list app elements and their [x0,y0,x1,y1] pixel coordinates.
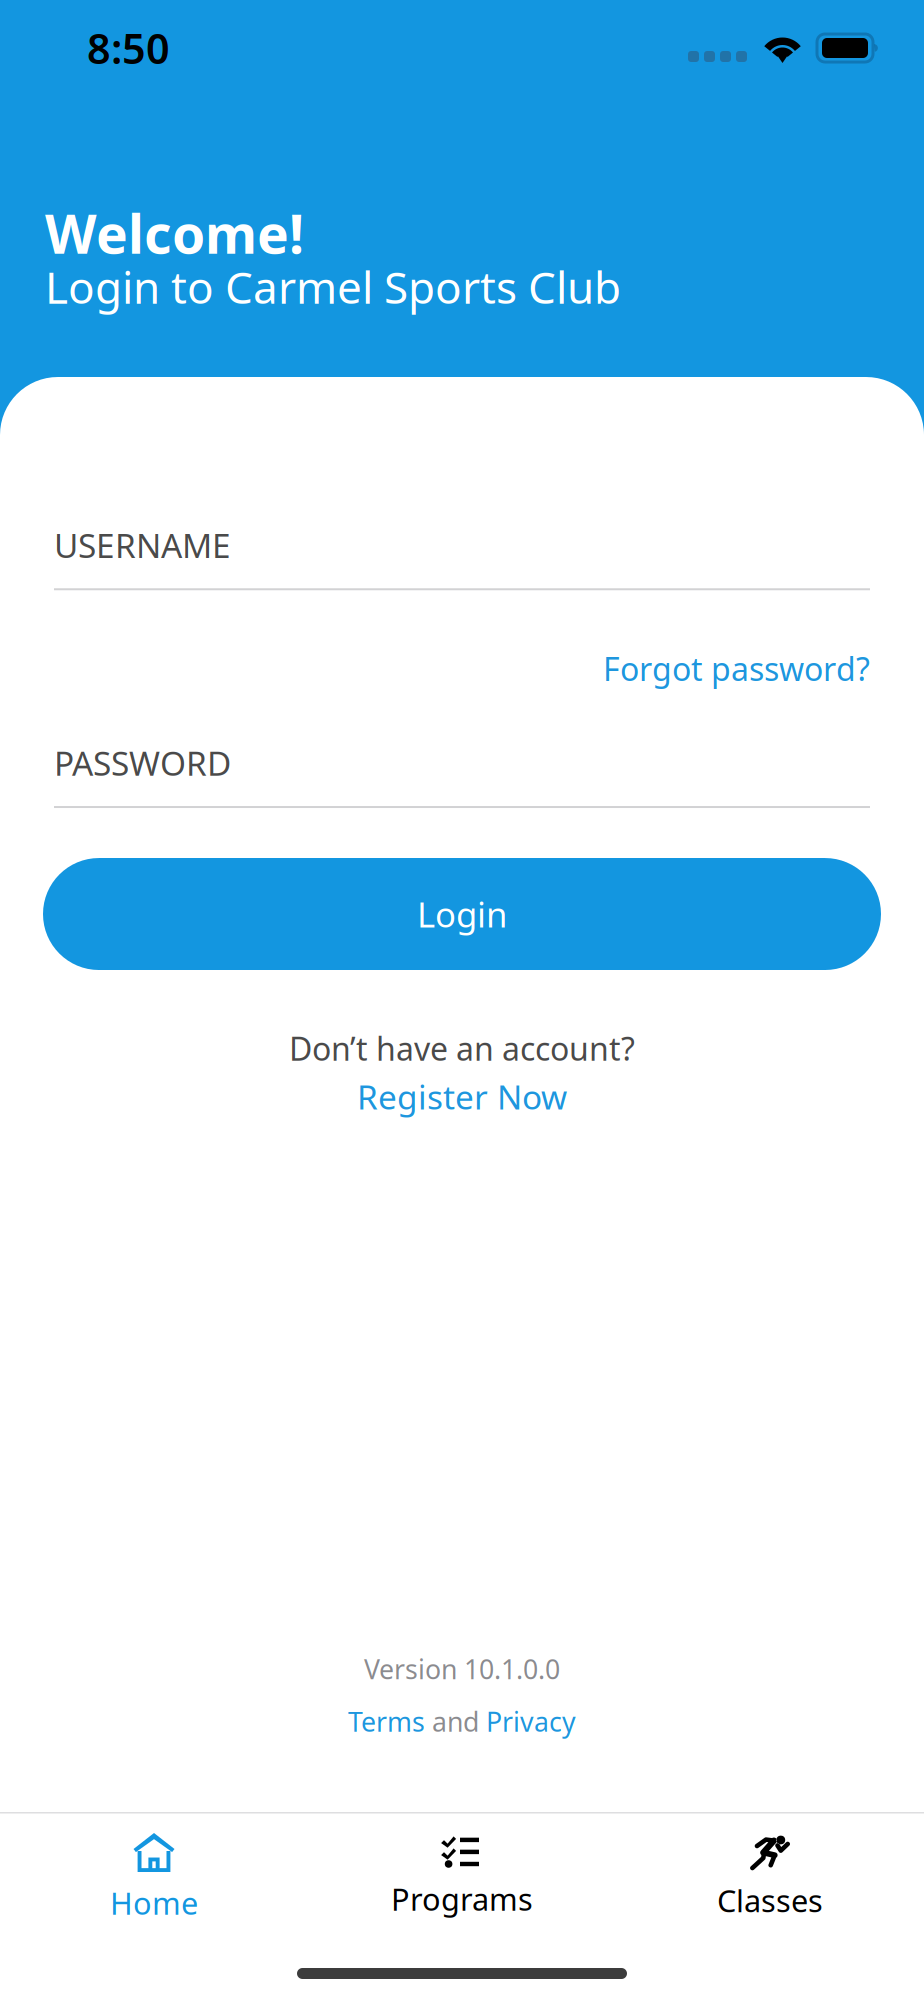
button[interactable]: Register Now [357,1074,567,1119]
staticText: Register Now [357,1074,567,1119]
staticText: USERNAME [54,523,231,567]
staticText: Login to Carmel Sports Club [45,258,621,316]
staticText: Terms [348,1704,425,1739]
staticText: and [425,1704,486,1739]
staticText: Classes [717,1880,823,1921]
button[interactable]: Classes [616,1829,924,1927]
button[interactable]: Home [0,1826,308,1929]
staticText: Programs [391,1878,533,1919]
staticText: Don’t have an account? [289,1027,635,1069]
button[interactable]: Privacy [486,1704,576,1739]
staticText: Privacy [486,1704,576,1739]
button[interactable]: Programs [308,1830,616,1925]
staticText: Welcome! [45,198,304,268]
staticText: Login [417,891,507,937]
staticText: Version 10.1.0.0 [364,1651,560,1687]
button[interactable]: Terms [348,1704,425,1739]
button[interactable]: Login [43,858,881,970]
staticText: PASSWORD [54,741,231,785]
staticText: Home [110,1882,198,1923]
button[interactable]: Forgot password? [603,647,870,690]
staticText: Forgot password? [603,647,870,690]
staticText: 8:50 [87,21,170,75]
